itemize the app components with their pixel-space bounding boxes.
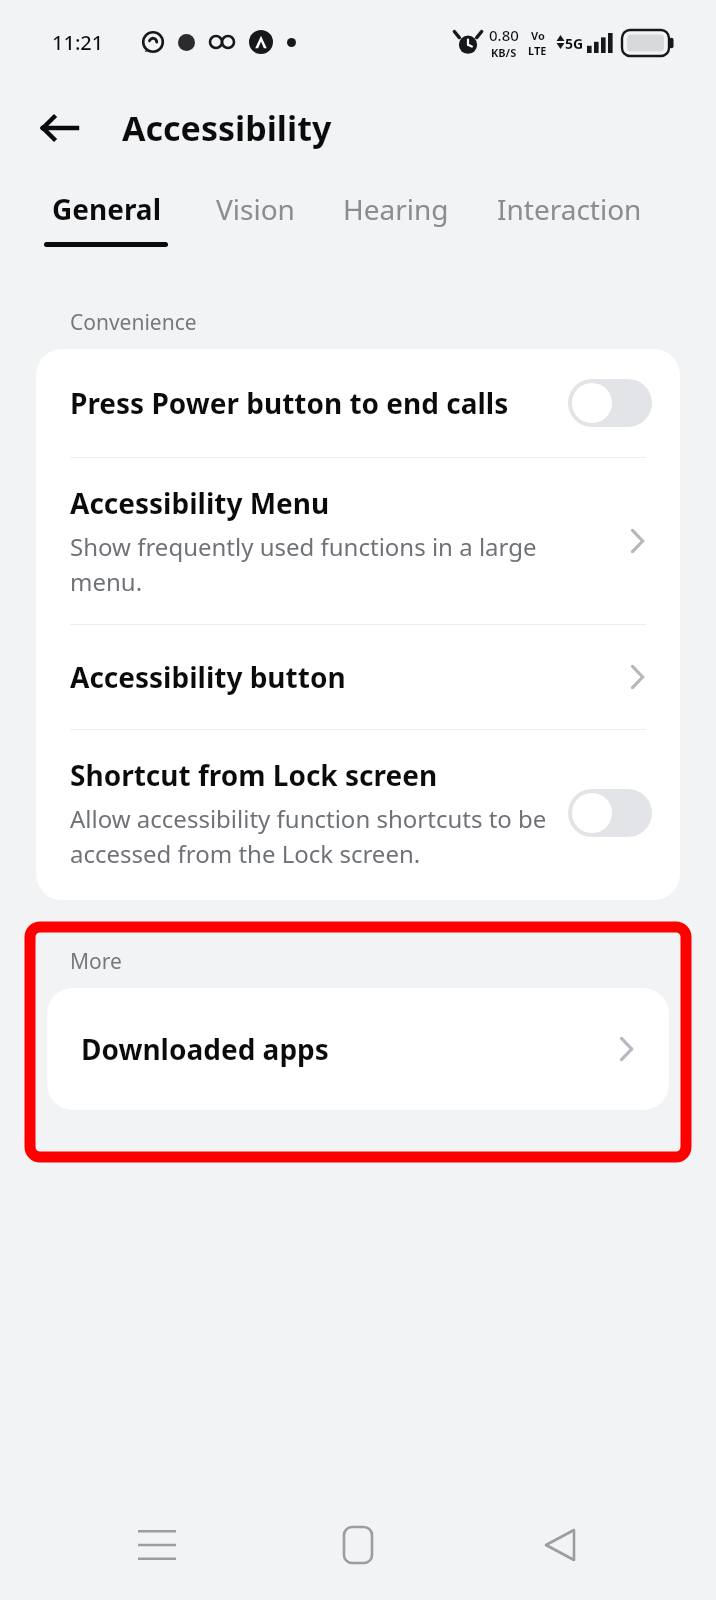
staticText: Convenience bbox=[70, 308, 197, 337]
button[interactable]: General bbox=[44, 172, 168, 247]
staticText: 0.80 bbox=[489, 25, 519, 45]
staticText: 11:21 bbox=[52, 29, 104, 56]
button[interactable]: Accessibility button bbox=[36, 625, 680, 729]
button[interactable]: Interaction bbox=[497, 172, 642, 242]
button[interactable]: Back bbox=[26, 94, 94, 162]
button[interactable]: Toggle bbox=[568, 379, 652, 427]
button[interactable]: Downloaded apps bbox=[47, 988, 669, 1110]
button[interactable]: Recents bbox=[112, 1500, 202, 1590]
staticText: Hearing bbox=[343, 190, 449, 228]
button[interactable]: Press Power button to end calls bbox=[36, 349, 680, 457]
button[interactable]: Vision bbox=[216, 172, 295, 242]
button[interactable]: Shortcut from Lock screen bbox=[36, 730, 680, 900]
staticText: Show frequently used functions in a larg… bbox=[70, 530, 604, 598]
staticText: 5G bbox=[565, 34, 584, 53]
staticText: Accessibility bbox=[122, 105, 332, 151]
button[interactable]: Home bbox=[313, 1500, 403, 1590]
staticText: Vo bbox=[531, 28, 545, 43]
staticText: Accessibility Menu bbox=[70, 484, 330, 522]
staticText: Accessibility button bbox=[70, 658, 622, 696]
staticText: LTE bbox=[528, 43, 547, 58]
staticText: Press Power button to end calls bbox=[70, 384, 550, 422]
button[interactable]: Toggle bbox=[568, 789, 652, 837]
staticText: General bbox=[52, 190, 161, 228]
staticText: Interaction bbox=[497, 190, 642, 228]
staticText: Vision bbox=[216, 190, 295, 228]
staticText: Allow accessibility function shortcuts t… bbox=[70, 802, 550, 870]
staticText: More bbox=[70, 947, 122, 976]
button[interactable]: Accessibility Menu bbox=[36, 458, 680, 624]
staticText: KB/S bbox=[491, 45, 517, 60]
staticText: Shortcut from Lock screen bbox=[70, 756, 438, 794]
button[interactable]: Back bbox=[515, 1500, 605, 1590]
button[interactable]: Hearing bbox=[343, 172, 449, 242]
staticText: Downloaded apps bbox=[81, 1030, 611, 1068]
